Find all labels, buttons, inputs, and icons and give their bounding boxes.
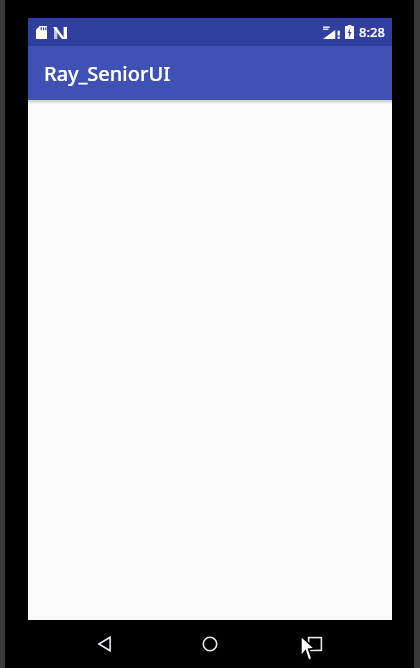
staticText: Ray_SeniorUI [44,60,171,87]
staticText: 8:28 [359,23,385,41]
button[interactable]: Home [182,620,238,668]
button[interactable]: Back [77,620,133,668]
button[interactable]: Recent apps [287,620,343,668]
button[interactable]: Ray_SeniorUI [28,46,392,100]
